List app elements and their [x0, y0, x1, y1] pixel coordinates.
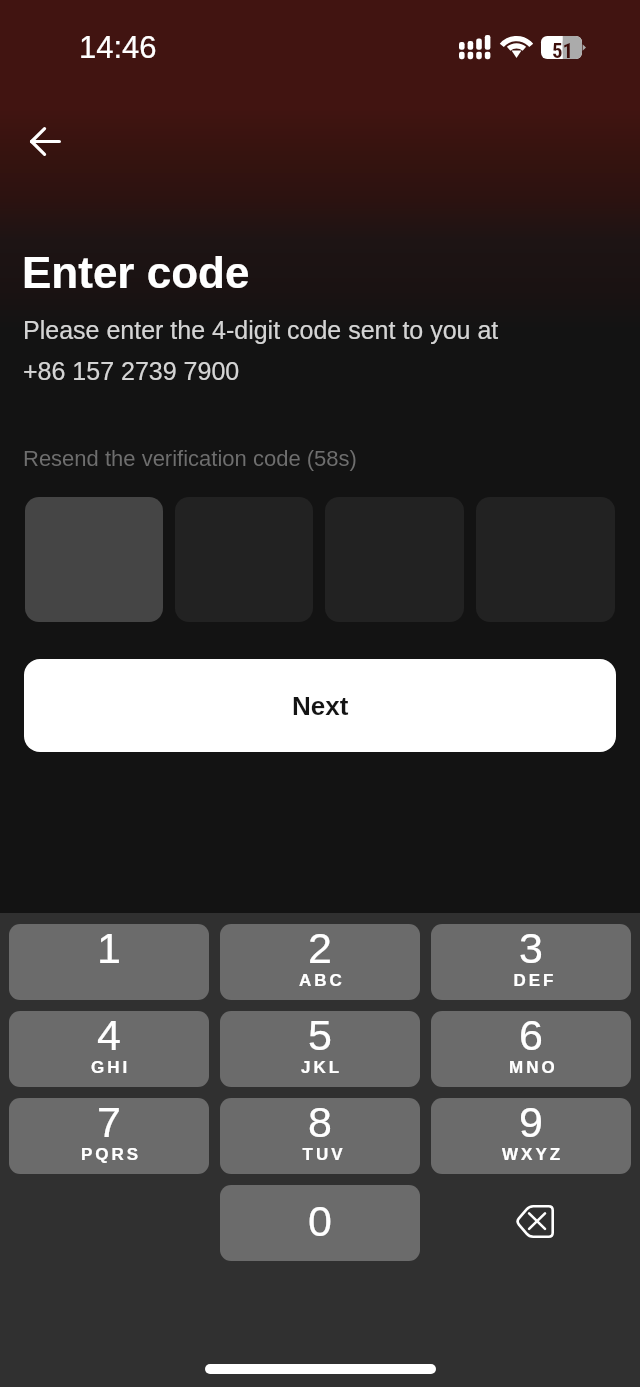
staticText: WXYZ: [502, 1145, 564, 1164]
button[interactable]: [25, 497, 163, 622]
staticText: 9: [519, 1098, 543, 1146]
staticText: MNO: [509, 1058, 558, 1077]
staticText: 6: [519, 1011, 543, 1059]
staticText: Please enter the 4-digit code sent to yo…: [23, 316, 499, 385]
staticText: 2: [308, 924, 332, 972]
staticText: 0: [308, 1197, 332, 1245]
button[interactable]: 0: [220, 1185, 420, 1261]
staticText: 4: [97, 1011, 121, 1059]
staticText: 8: [308, 1098, 332, 1146]
button[interactable]: 5: [220, 1011, 420, 1087]
staticText: 3: [519, 924, 543, 972]
button[interactable]: Next: [24, 659, 616, 752]
button[interactable]: 7: [9, 1098, 209, 1174]
staticText: DEF: [512, 971, 555, 990]
staticText: 5: [308, 1011, 332, 1059]
button[interactable]: 1: [9, 924, 209, 1000]
staticText: 51: [552, 39, 574, 62]
button[interactable]: 8: [220, 1098, 420, 1174]
staticText: TUV: [301, 1145, 344, 1164]
button[interactable]: 3: [431, 924, 631, 1000]
button[interactable]: Backspace: [431, 1185, 631, 1261]
staticText: PQRS: [81, 1145, 142, 1164]
button[interactable]: 6: [431, 1011, 631, 1087]
staticText: 7: [97, 1098, 121, 1146]
button[interactable]: Resend the verification code (58s): [23, 446, 357, 471]
button[interactable]: 9: [431, 1098, 631, 1174]
staticText: Next: [292, 691, 349, 720]
button[interactable]: 4: [9, 1011, 209, 1087]
button[interactable]: 2: [220, 924, 420, 1000]
staticText: 1: [97, 924, 121, 972]
button[interactable]: Back: [17, 113, 73, 169]
staticText: 14:46: [79, 30, 157, 65]
staticText: ABC: [299, 971, 345, 990]
staticText: GHI: [91, 1058, 131, 1077]
staticText: JKL: [301, 1058, 343, 1077]
staticText: Enter code: [22, 248, 250, 297]
